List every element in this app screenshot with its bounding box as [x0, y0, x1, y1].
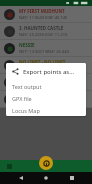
staticText: GPX file: [12, 95, 32, 102]
staticText: BETA TRAIL: [19, 93, 45, 99]
button[interactable]: Locus Map: [6, 104, 86, 116]
staticText: N50° 01.0001 E08° 01.001: [19, 66, 68, 71]
staticText: N48° 09.1100 E11° 34.220: [19, 83, 68, 88]
button[interactable]: BETA TRAIL: [0, 91, 92, 107]
button[interactable]: NO LIMIT - NO LIMIT: [0, 57, 92, 73]
button[interactable]: MY FIRST MUDHUNT: [0, 6, 92, 22]
button[interactable]: GPX file: [6, 92, 86, 104]
staticText: NESSIE: [19, 42, 35, 48]
button[interactable]: Back: [16, 173, 26, 183]
button[interactable]: ALPHA CACHE: [0, 74, 92, 90]
button[interactable]: Menu: [4, 161, 14, 171]
button[interactable]: Text output: [6, 80, 86, 92]
staticText: MY FIRST MUDHUNT: [19, 8, 65, 14]
button[interactable]: NESSIE: [0, 40, 92, 56]
staticText: N47° 22.4400 E09° 12.880: [19, 100, 68, 105]
staticText: N49° 25.2256 E04° 11.210: [19, 32, 68, 37]
button[interactable]: 3. HAUNTED CASTLE: [0, 23, 92, 39]
staticText: N49° 11.9640 E08° 40.145: [19, 15, 68, 20]
staticText: NO LIMIT - NO LIMIT: [19, 59, 66, 65]
staticText: Export points as…: [23, 68, 75, 76]
button[interactable]: Home: [41, 173, 51, 183]
button[interactable]: Add waypoint: [39, 156, 53, 170]
staticText: Locus Map: [12, 107, 40, 114]
staticText: 3. HAUNTED CASTLE: [19, 25, 64, 31]
staticText: N57° 13.5001 W04° 26.444: [19, 49, 69, 54]
button[interactable]: Recent apps: [67, 173, 77, 183]
staticText: Text output: [12, 83, 42, 90]
